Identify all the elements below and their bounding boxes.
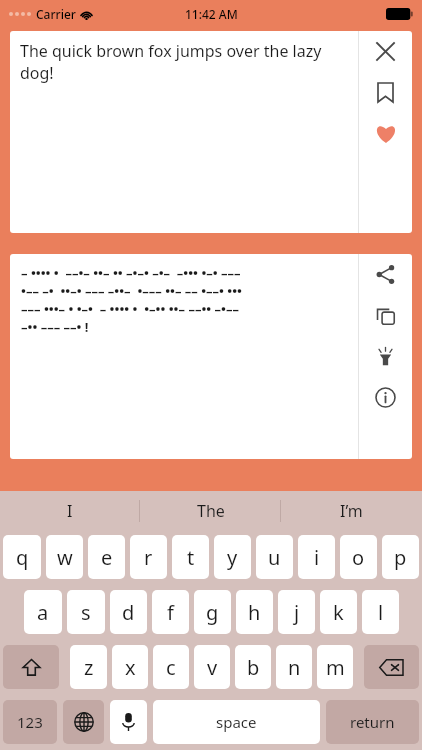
button[interactable]: l — [362, 590, 399, 634]
staticText: c — [166, 654, 176, 681]
staticText: q — [16, 544, 29, 571]
button[interactable]: Dictation — [110, 700, 147, 744]
button[interactable]: d — [110, 590, 147, 634]
button[interactable]: Close — [359, 31, 412, 72]
button[interactable]: i — [298, 535, 335, 579]
button[interactable]: o — [340, 535, 377, 579]
button[interactable]: b — [235, 645, 271, 689]
button[interactable]: q — [3, 535, 41, 579]
button[interactable]: Switch keyboard — [63, 700, 104, 744]
staticText: m — [326, 654, 345, 681]
button[interactable]: e — [88, 535, 125, 579]
button[interactable]: I’m — [281, 491, 422, 531]
staticText: s — [81, 599, 91, 626]
button[interactable]: s — [67, 590, 105, 634]
staticText: y — [227, 544, 238, 571]
button[interactable]: f — [152, 590, 189, 634]
button[interactable]: Bookmark — [359, 72, 412, 113]
staticText: –•• ––– ––• ! — [21, 318, 89, 336]
button[interactable]: h — [236, 590, 273, 634]
staticText: i — [314, 544, 320, 571]
button[interactable]: k — [320, 590, 357, 634]
staticText: I — [67, 500, 73, 522]
button[interactable]: c — [153, 645, 189, 689]
staticText: v — [207, 654, 218, 681]
staticText: h — [248, 599, 261, 626]
staticText: d — [122, 599, 135, 626]
staticText: j — [294, 599, 300, 626]
staticText: ––– •••– • •–• – •••• • •–•• ••– ––•• –•… — [21, 300, 239, 318]
staticText: l — [378, 599, 384, 626]
staticText: – •••• • ––•– ••– •• –•–• –•– –••• •–• –… — [21, 264, 241, 282]
button[interactable]: Info — [359, 377, 412, 418]
staticText: r — [144, 544, 153, 571]
staticText: x — [125, 654, 136, 681]
button[interactable]: g — [194, 590, 231, 634]
button[interactable]: p — [382, 535, 419, 579]
staticText: t — [187, 544, 195, 571]
button[interactable]: 123 — [3, 700, 57, 744]
staticText: b — [247, 654, 260, 681]
staticText: n — [288, 654, 301, 681]
button[interactable]: n — [276, 645, 312, 689]
button[interactable]: Favorite — [359, 113, 412, 154]
staticText: e — [101, 544, 113, 571]
staticText: I’m — [340, 500, 363, 522]
button[interactable]: Share — [359, 254, 412, 295]
staticText: z — [84, 654, 94, 681]
staticText: u — [268, 544, 281, 571]
staticText: w — [57, 544, 73, 571]
staticText: f — [167, 599, 174, 626]
button[interactable]: w — [46, 535, 83, 579]
button[interactable]: Shift — [3, 645, 59, 689]
staticText: space — [216, 712, 257, 732]
staticText: k — [333, 599, 344, 626]
staticText: The — [197, 500, 225, 522]
button[interactable]: m — [317, 645, 353, 689]
button[interactable]: y — [214, 535, 251, 579]
button[interactable]: Backspace — [364, 645, 419, 689]
staticText: p — [394, 544, 407, 571]
button[interactable]: Flashlight — [359, 336, 412, 377]
button[interactable]: Copy — [359, 295, 412, 336]
staticText: The quick brown fox jumps over the lazy … — [20, 40, 352, 84]
button[interactable]: v — [194, 645, 230, 689]
button[interactable]: I — [0, 491, 140, 531]
button[interactable]: The — [140, 491, 281, 531]
staticText: a — [37, 599, 49, 626]
button[interactable]: z — [70, 645, 107, 689]
button[interactable]: j — [278, 590, 315, 634]
staticText: o — [352, 544, 365, 571]
staticText: Carrier — [36, 6, 76, 22]
button[interactable]: t — [172, 535, 209, 579]
button[interactable]: a — [24, 590, 62, 634]
button[interactable]: x — [112, 645, 148, 689]
button[interactable]: space — [153, 700, 320, 744]
staticText: •–– –• ••–• ––– –••– •––– ••– –– •––• ••… — [21, 282, 243, 300]
button[interactable]: return — [326, 700, 419, 744]
staticText: g — [206, 599, 219, 626]
button[interactable]: u — [256, 535, 293, 579]
button[interactable]: r — [130, 535, 167, 579]
staticText: return — [350, 712, 395, 732]
staticText: 123 — [17, 712, 43, 732]
staticText: 11:42 AM — [185, 6, 238, 22]
